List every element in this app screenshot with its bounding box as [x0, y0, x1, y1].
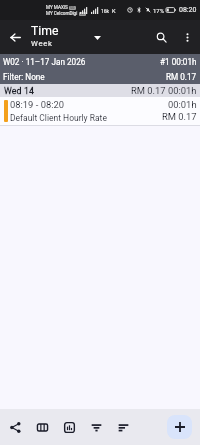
button[interactable]: Reports	[58, 416, 81, 439]
staticText: 16k	[101, 8, 110, 14]
staticText: RM 0.17	[166, 72, 197, 82]
staticText: 5G	[70, 6, 75, 10]
staticText: #1 00:01h	[160, 57, 197, 67]
staticText: 17%	[153, 7, 165, 14]
staticText: Default Client Hourly Rate	[10, 113, 107, 123]
staticText: 08:20	[179, 6, 197, 14]
staticText: K	[112, 8, 116, 14]
staticText: Filter: None	[3, 72, 45, 82]
staticText: Time	[31, 24, 59, 38]
staticText: Wed 14	[4, 86, 35, 96]
staticText: MY CelcomDigi	[46, 11, 78, 16]
button[interactable]: Wed 14	[0, 84, 200, 97]
button[interactable]: Search	[148, 24, 174, 50]
button[interactable]: Columns	[31, 416, 54, 439]
staticText: MY MAXIS	[46, 5, 68, 10]
staticText: 08:19 - 08:20	[10, 99, 65, 110]
staticText: RM 0.17 00:01h	[131, 85, 197, 96]
staticText: Week	[31, 39, 53, 48]
button[interactable]: More options	[174, 24, 200, 50]
staticText: W02 · 11–17 Jan 2026	[3, 57, 86, 67]
button[interactable]: Change period	[89, 29, 106, 46]
button[interactable]: Add entry	[167, 415, 192, 439]
staticText: RM 0.17	[162, 111, 197, 122]
button[interactable]: Sort	[112, 416, 135, 439]
staticText: 5G	[80, 12, 85, 16]
staticText: 00:01h	[168, 99, 197, 110]
button[interactable]: W02 · 11–17 Jan 2026	[0, 54, 200, 84]
button[interactable]: 08:19 - 08:20	[0, 97, 200, 126]
button[interactable]: Filter	[85, 416, 108, 439]
button[interactable]: Back	[4, 26, 26, 48]
button[interactable]: Share	[4, 416, 27, 439]
